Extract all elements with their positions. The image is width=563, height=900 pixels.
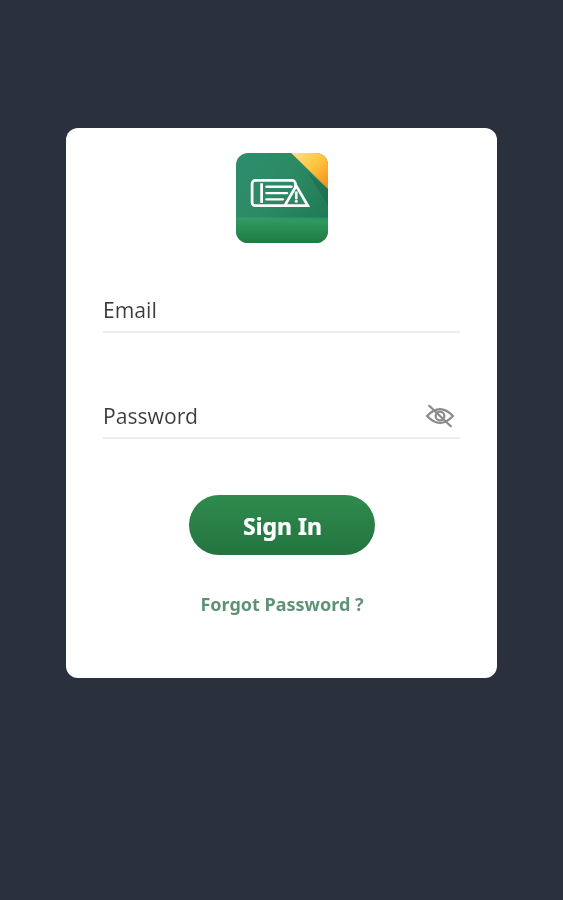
button[interactable]: Sign In	[189, 495, 375, 555]
button[interactable]: Forgot Password ?	[200, 592, 364, 617]
staticText: Sign In	[243, 510, 322, 541]
staticText: Forgot Password ?	[200, 592, 364, 617]
staticText: Email	[103, 296, 157, 325]
staticText: Password	[103, 402, 198, 431]
button[interactable]: Email	[103, 289, 460, 333]
button[interactable]: Password	[103, 395, 420, 437]
button[interactable]: Show password	[420, 396, 460, 436]
